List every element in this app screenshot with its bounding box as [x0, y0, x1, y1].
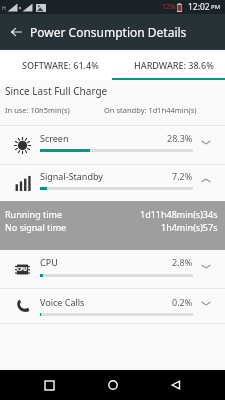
button[interactable]: SOFTWARE: 61.4%: [0, 50, 112, 80]
button[interactable]: Home: [98, 370, 128, 400]
staticText: Screen: [40, 132, 69, 144]
staticText: Voice Calls: [40, 296, 85, 308]
staticText: PM: [211, 3, 221, 11]
button[interactable]: Screen: [0, 126, 225, 164]
staticText: 28.3%: [167, 132, 193, 144]
button[interactable]: Expand: [193, 126, 225, 164]
button[interactable]: Expand: [193, 289, 225, 323]
button[interactable]: Back: [161, 370, 191, 400]
button[interactable]: Expand: [193, 250, 225, 288]
staticText: In use: 10h5min(s): [5, 105, 70, 115]
staticText: 12:02: [188, 1, 210, 13]
staticText: Running time: [5, 208, 63, 220]
button[interactable]: CPU: [0, 250, 225, 288]
staticText: CPU: [40, 256, 58, 268]
staticText: 1h4min(s)57s: [161, 221, 218, 233]
staticText: 7.2%: [172, 170, 193, 182]
staticText: HARDWARE: 38.6%: [134, 59, 214, 71]
staticText: H: [2, 5, 6, 12]
staticText: Signal-Standby: [40, 170, 103, 182]
button[interactable]: Signal-Standby: [0, 165, 225, 201]
button[interactable]: HARDWARE: 38.6%: [112, 50, 225, 80]
button[interactable]: Recent apps: [34, 370, 64, 400]
staticText: 1d11h48min(s)34s: [140, 208, 218, 220]
staticText: No signal time: [5, 221, 67, 233]
staticText: SOFTWARE: 61.4%: [22, 59, 99, 71]
staticText: 2.8%: [172, 256, 193, 268]
button[interactable]: Back: [0, 14, 30, 50]
staticText: CPU: [17, 266, 28, 273]
staticText: Power Consumption Details: [30, 24, 187, 40]
button[interactable]: Voice Calls: [0, 289, 225, 323]
staticText: 0.2%: [172, 296, 193, 308]
staticText: Since Last Full Charge: [5, 84, 108, 98]
staticText: 12%: [162, 2, 176, 12]
staticText: On standby: 1d1h44min(s): [104, 105, 197, 115]
button[interactable]: Expand: [193, 165, 225, 201]
